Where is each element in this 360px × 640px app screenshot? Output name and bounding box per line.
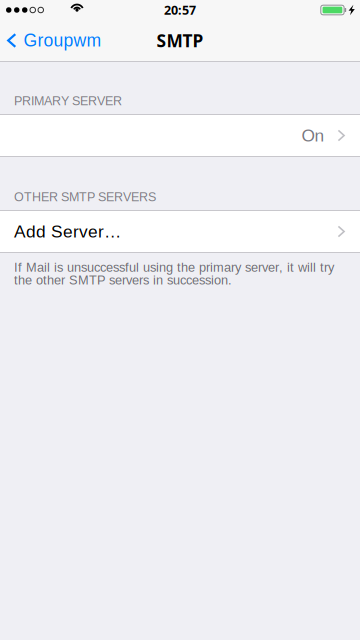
staticText: If Mail is unsuccessful using the primar… <box>14 261 334 286</box>
staticText: OTHER SMTP SERVERS <box>14 190 156 204</box>
staticText: Groupwm <box>23 31 101 50</box>
button[interactable]: Groupwm <box>0 25 111 56</box>
staticText: 20:57 <box>164 1 196 19</box>
staticText: Add Server… <box>14 222 121 241</box>
staticText: PRIMARY SERVER <box>14 94 122 108</box>
staticText: On <box>301 126 324 145</box>
staticText: SMTP <box>156 29 203 52</box>
button[interactable]: On <box>0 115 360 156</box>
button[interactable]: Add Server… <box>0 211 360 252</box>
